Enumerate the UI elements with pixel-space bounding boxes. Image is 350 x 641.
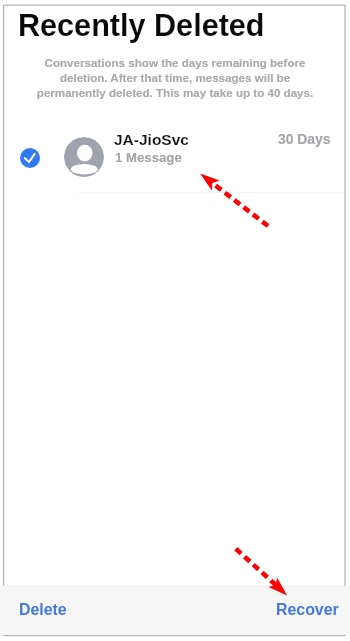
staticText: 1 Message xyxy=(115,150,182,165)
staticText: JA-JioSvc xyxy=(114,131,189,148)
button[interactable]: Delete xyxy=(7,593,79,627)
other: Selected xyxy=(20,148,40,168)
staticText: Recently Deleted xyxy=(18,8,265,42)
button[interactable]: Selected xyxy=(0,128,350,178)
staticText: Delete xyxy=(19,601,67,619)
staticText: Recover xyxy=(276,601,339,619)
staticText: 30 Days xyxy=(278,131,331,147)
staticText: Conversations show the days remaining be… xyxy=(33,56,317,100)
button[interactable]: Recover xyxy=(264,593,350,627)
